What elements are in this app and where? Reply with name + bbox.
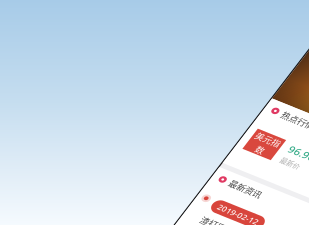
button[interactable]: 热点行情 (3, 195, 309, 225)
